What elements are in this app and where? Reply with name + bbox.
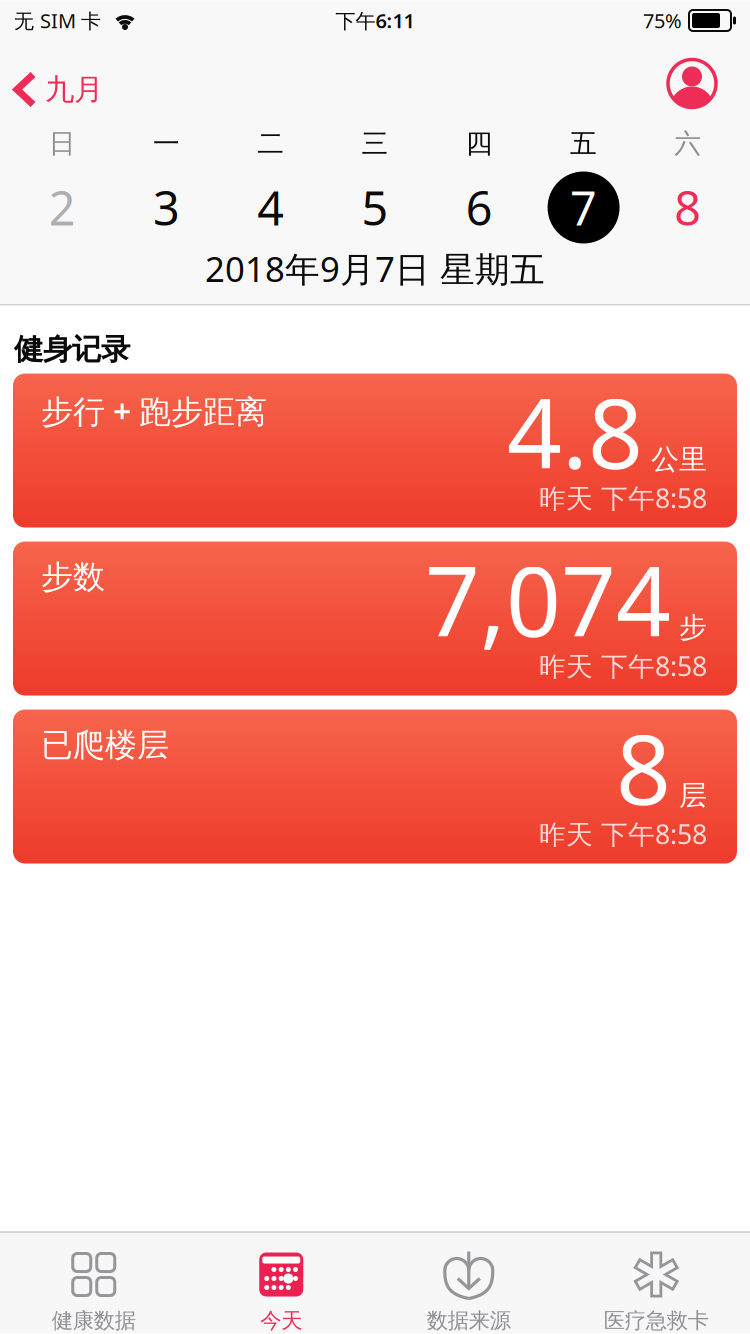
staticText: 已爬楼层 bbox=[41, 725, 169, 765]
button[interactable]: 7 bbox=[531, 171, 636, 243]
staticText: 健身记录 bbox=[14, 331, 130, 367]
button[interactable]: 2 bbox=[10, 176, 114, 238]
staticText: 医疗急救卡 bbox=[604, 1307, 709, 1334]
staticText: 九月 bbox=[45, 71, 103, 107]
button[interactable]: 6 bbox=[427, 176, 531, 238]
staticText: 昨天 下午8:58 bbox=[539, 480, 707, 515]
staticText: 4 bbox=[257, 176, 284, 238]
button[interactable]: 5 bbox=[323, 176, 427, 238]
staticText: 数据来源 bbox=[427, 1307, 511, 1334]
staticText: 昨天 下午8:58 bbox=[539, 816, 707, 851]
staticText: 五 bbox=[570, 127, 597, 160]
button[interactable] bbox=[668, 54, 750, 102]
staticText: 步数 bbox=[41, 557, 105, 597]
staticText: 健康数据 bbox=[52, 1307, 136, 1334]
staticText: 昨天 下午8:58 bbox=[539, 648, 707, 683]
staticText: 步 bbox=[679, 610, 707, 645]
staticText: 一 bbox=[153, 127, 180, 160]
staticText: 3 bbox=[153, 176, 180, 238]
staticText: 4.8 bbox=[507, 368, 643, 495]
staticText: 六 bbox=[674, 127, 701, 160]
staticText: 6 bbox=[466, 176, 493, 238]
button[interactable]: 今天 bbox=[187, 1252, 375, 1334]
button[interactable]: 4 bbox=[219, 176, 323, 238]
button[interactable]: 九月 bbox=[0, 60, 103, 96]
button[interactable]: 步行 + 跑步距离 bbox=[13, 373, 737, 527]
staticText: 今天 bbox=[260, 1307, 302, 1334]
staticText: 75% bbox=[643, 7, 682, 34]
staticText: 二 bbox=[257, 127, 284, 160]
button[interactable]: 数据来源 bbox=[375, 1252, 562, 1334]
staticText: 5 bbox=[361, 176, 388, 238]
button[interactable]: 健康数据 bbox=[0, 1252, 187, 1334]
staticText: 三 bbox=[361, 127, 388, 160]
staticText: 无 SIM 卡 bbox=[14, 7, 101, 34]
staticText: 层 bbox=[679, 778, 707, 813]
staticText: 2018年9月7日 星期五 bbox=[205, 245, 545, 291]
button[interactable]: 8 bbox=[636, 176, 740, 238]
button[interactable]: 已爬楼层 bbox=[13, 709, 737, 863]
staticText: 下午6:11 bbox=[335, 7, 414, 34]
button[interactable]: 医疗急救卡 bbox=[562, 1252, 750, 1334]
staticText: 8 bbox=[674, 176, 701, 238]
staticText: 公里 bbox=[651, 442, 707, 477]
staticText: 7,074 bbox=[425, 536, 671, 663]
staticText: 8 bbox=[616, 704, 671, 831]
staticText: 日 bbox=[49, 127, 76, 160]
staticText: 四 bbox=[466, 127, 493, 160]
staticText: 步行 + 跑步距离 bbox=[41, 389, 267, 432]
button[interactable]: 步数 bbox=[13, 541, 737, 695]
button[interactable]: 3 bbox=[114, 176, 219, 238]
staticText: 7 bbox=[570, 176, 597, 238]
staticText: 2 bbox=[49, 176, 76, 238]
